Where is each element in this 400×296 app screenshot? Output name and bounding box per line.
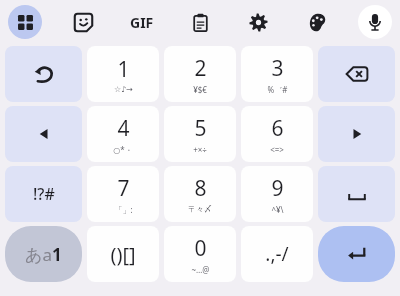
button[interactable]: Undo — [5, 46, 82, 102]
staticText: 4 — [117, 114, 130, 143]
staticText: 6 — [271, 114, 284, 143]
button[interactable]: 5 — [164, 106, 236, 162]
staticText: 3 — [271, 54, 284, 83]
staticText: 8 — [194, 174, 207, 203]
button[interactable]: !?# — [5, 166, 82, 222]
button[interactable]: 9 — [241, 166, 313, 222]
button[interactable]: GIF — [125, 5, 159, 39]
button[interactable]: Cursor left — [5, 106, 82, 162]
staticText: 〒々〆 — [188, 204, 212, 214]
button[interactable]: 0 — [164, 226, 236, 282]
staticText: ()[] — [110, 241, 136, 268]
staticText: 7 — [117, 174, 130, 203]
button[interactable]: 6 — [241, 106, 313, 162]
staticText: 9 — [271, 174, 284, 203]
staticText: 2 — [194, 54, 207, 83]
staticText: 1 — [52, 243, 62, 266]
button[interactable]: .,-/ — [241, 226, 313, 282]
button[interactable]: 4 — [87, 106, 159, 162]
button[interactable]: 2 — [164, 46, 236, 102]
staticText: ☆♪→ — [114, 85, 133, 94]
button[interactable]: Settings — [241, 5, 275, 39]
button[interactable]: 1 — [87, 46, 159, 102]
staticText: ~…@ — [191, 264, 210, 275]
staticText: 「」: — [114, 204, 133, 215]
button[interactable]: Apps — [8, 5, 42, 39]
staticText: ○*・ — [113, 144, 133, 155]
staticText: ^¥\ — [271, 204, 284, 215]
staticText: %゛# — [267, 84, 288, 95]
button[interactable]: ()[] — [87, 226, 159, 282]
button[interactable]: Stickers — [66, 5, 100, 39]
button[interactable]: 3 — [241, 46, 313, 102]
staticText: !?# — [33, 183, 55, 205]
button[interactable]: Enter — [318, 226, 395, 282]
button[interactable]: あa — [5, 226, 82, 282]
staticText: ¥$€ — [193, 84, 207, 95]
staticText: +×÷ — [193, 144, 207, 155]
button[interactable]: 8 — [164, 166, 236, 222]
staticText: <=> — [270, 144, 284, 155]
button[interactable]: Voice input — [358, 5, 392, 39]
staticText: 1 — [117, 55, 130, 84]
staticText: .,-/ — [265, 241, 289, 267]
button[interactable]: Clipboard — [183, 5, 217, 39]
button[interactable]: 7 — [87, 166, 159, 222]
staticText: GIF — [130, 13, 154, 32]
button[interactable]: Cursor right — [318, 106, 395, 162]
staticText: あa — [25, 243, 52, 266]
staticText: 0 — [194, 234, 207, 263]
button[interactable]: Themes — [300, 5, 334, 39]
button[interactable]: Space — [318, 166, 395, 222]
staticText: 5 — [194, 114, 207, 143]
button[interactable]: Backspace — [318, 46, 395, 102]
